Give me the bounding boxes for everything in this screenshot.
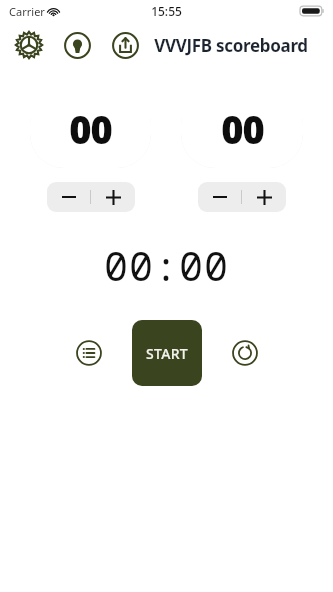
staticText: 15:55: [151, 3, 182, 19]
button[interactable]: 00: [181, 90, 303, 168]
staticText: START: [146, 344, 188, 363]
button[interactable]: Settings: [14, 30, 44, 60]
button[interactable]: VVVJFB scoreboard: [154, 34, 308, 57]
staticText: 00: [69, 103, 112, 155]
button[interactable]: 00: [30, 90, 151, 168]
staticText: 00:00: [104, 238, 229, 292]
button[interactable]: Scoreboard log: [72, 336, 106, 370]
button[interactable]: Increase score: [91, 182, 135, 212]
staticText: Carrier: [9, 4, 45, 19]
button[interactable]: Decrease score: [198, 182, 241, 212]
button[interactable]: Keep screen on: [62, 30, 92, 60]
button[interactable]: Decrease score: [47, 182, 90, 212]
button[interactable]: Share: [110, 30, 140, 60]
button[interactable]: Increase score: [242, 182, 286, 212]
staticText: 00: [221, 103, 264, 155]
button[interactable]: Reset: [228, 336, 262, 370]
button[interactable]: START: [132, 320, 202, 386]
